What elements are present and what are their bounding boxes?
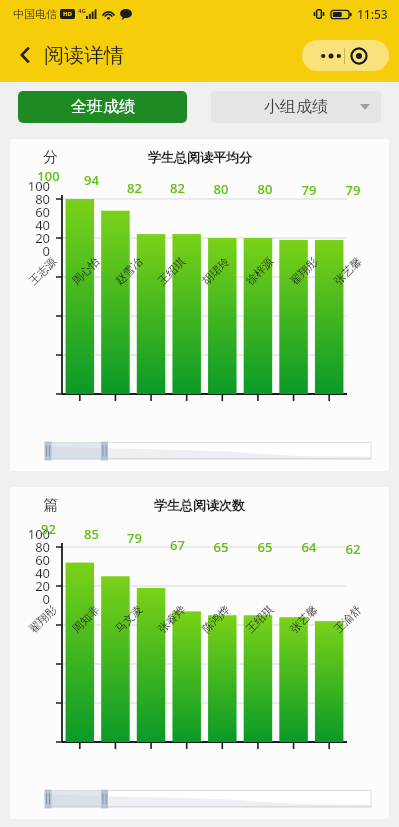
staticText: 张睿烨 [155,602,188,636]
staticText: 全班成绩 [71,97,135,117]
staticText: 学生总阅读平均分 [148,149,252,165]
button[interactable]: 全班成绩 [18,91,187,123]
staticText: 周心怡 [69,254,102,288]
staticText: 20 [10,577,50,595]
staticText: 赵雪冶 [112,254,145,288]
staticText: 篇 [43,496,58,515]
staticText: 65 [243,538,287,556]
staticText: 67 [156,536,199,554]
button[interactable]: 篇 [10,487,389,819]
button[interactable]: Back [8,38,42,72]
staticText: 80 [199,180,243,198]
staticText: 40 [10,564,50,582]
staticText: 学生总阅读次数 [154,497,245,513]
staticText: 80 [10,538,50,556]
staticText: 64 [287,538,331,556]
staticText: HD [63,10,72,18]
staticText: 79 [331,181,375,199]
staticText: 胡珺玲 [199,254,232,288]
staticText: 0 [10,242,50,260]
staticText: 82 [156,179,199,197]
staticText: 王志源 [26,254,59,288]
staticText: 92 [27,520,70,538]
staticText: 60 [10,203,50,221]
button[interactable]: Menu and close [302,40,389,71]
staticText: 94 [70,171,113,189]
button[interactable]: 小组成绩 [211,91,381,123]
staticText: 翟翔彤 [287,254,320,288]
staticText: 王绍琪 [243,602,276,636]
staticText: 中国电信 [13,7,57,21]
staticText: 徐梓源 [243,254,276,288]
button[interactable]: 分 [10,139,389,471]
staticText: 80 [10,190,50,208]
staticText: 100 [10,177,50,195]
staticText: 周知非 [69,602,102,636]
staticText: 80 [243,180,287,198]
staticText: 王绍琪 [155,254,188,288]
staticText: 0 [10,590,50,608]
staticText: 王渝舒 [331,602,364,636]
staticText: 85 [70,525,113,543]
staticText: 79 [113,529,156,547]
staticText: 马文凌 [112,602,145,636]
staticText: 100 [27,167,70,185]
staticText: 62 [331,540,375,558]
staticText: 60 [10,551,50,569]
staticText: 20 [10,229,50,247]
staticText: 100 [10,525,50,543]
staticText: 40 [10,216,50,234]
staticText: 阅读详情 [44,43,124,68]
staticText: 陈鸿烨 [199,602,232,636]
staticText: 翟翔彤 [26,602,59,636]
staticText: 分 [43,148,58,167]
staticText: 4G [78,7,86,15]
staticText: 82 [113,179,156,197]
staticText: 小组成绩 [264,97,328,117]
staticText: 11:53 [357,6,388,22]
staticText: 65 [199,538,243,556]
staticText: 张艺馨 [331,254,364,288]
staticText: 张艺馨 [287,602,320,636]
staticText: 79 [287,181,331,199]
